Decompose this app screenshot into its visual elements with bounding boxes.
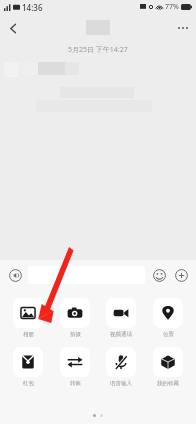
staticText: 14:36 xyxy=(22,2,43,13)
staticText: 相册 xyxy=(23,331,34,338)
button[interactable]: More options xyxy=(170,15,196,41)
button[interactable]: 红包 xyxy=(6,347,50,387)
button[interactable]: 视频通话 xyxy=(99,298,143,338)
staticText: 位置 xyxy=(163,331,174,338)
staticText: 视频通话 xyxy=(110,331,132,338)
button[interactable]: 位置 xyxy=(146,298,190,338)
staticText: 语音输入 xyxy=(110,380,132,387)
button[interactable]: 语音输入 xyxy=(99,347,143,387)
button[interactable] xyxy=(28,266,145,284)
button[interactable]: More attachments xyxy=(171,265,191,285)
button[interactable]: Back xyxy=(0,15,26,41)
staticText: 转账 xyxy=(70,380,81,387)
staticText: 我的收藏 xyxy=(157,380,179,387)
button[interactable]: 拍摄 xyxy=(53,298,97,338)
button[interactable]: Emoji xyxy=(149,265,169,285)
button[interactable]: 我的收藏 xyxy=(146,347,190,387)
button[interactable]: Voice message xyxy=(5,265,25,285)
button[interactable]: 相册 xyxy=(6,298,50,338)
staticText: 5月25日 下午14:27 xyxy=(68,45,128,55)
staticText: 77% xyxy=(165,2,179,12)
button[interactable]: 转账 xyxy=(53,347,97,387)
staticText: 拍摄 xyxy=(70,331,81,338)
staticText: 红包 xyxy=(23,380,34,387)
